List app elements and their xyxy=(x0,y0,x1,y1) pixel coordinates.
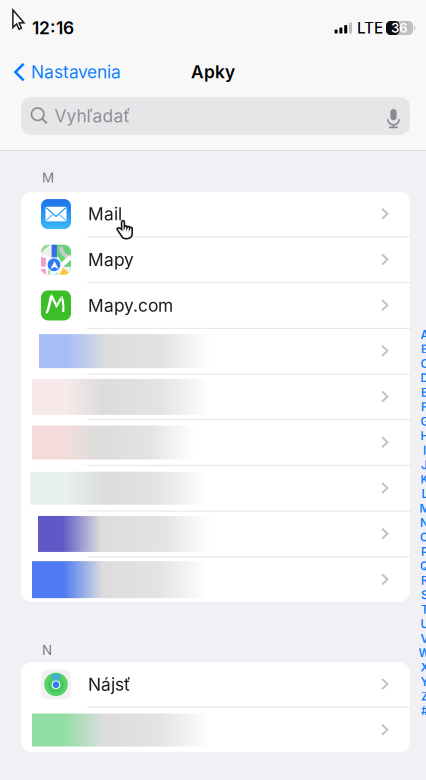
staticText: O xyxy=(420,530,426,544)
staticText: H xyxy=(420,429,426,443)
staticText: K xyxy=(420,473,426,486)
staticText: U xyxy=(420,617,426,631)
staticText: W xyxy=(418,646,426,660)
staticText: A xyxy=(420,328,426,342)
staticText: N xyxy=(420,516,426,530)
staticText: 36 xyxy=(391,20,408,36)
staticText: # xyxy=(421,704,426,718)
staticText: X xyxy=(420,661,426,674)
button[interactable]: App xyxy=(21,374,410,419)
button[interactable]: App xyxy=(21,512,410,556)
button[interactable]: App xyxy=(21,466,410,511)
staticText: N xyxy=(42,642,52,658)
staticText: Y xyxy=(420,675,426,689)
staticText: M xyxy=(419,501,426,515)
button[interactable]: Mapy xyxy=(21,237,410,282)
staticText: Vyhľadať xyxy=(54,105,130,126)
button[interactable]: App xyxy=(21,420,410,465)
button[interactable]: App xyxy=(21,329,410,373)
staticText: E xyxy=(421,386,426,399)
button[interactable]: Nájsť xyxy=(21,662,410,707)
button[interactable]: Nastavenia xyxy=(0,54,131,89)
staticText: R xyxy=(421,574,426,588)
staticText: Z xyxy=(421,689,426,703)
staticText: Nastavenia xyxy=(31,61,121,82)
staticText: Mail xyxy=(88,204,122,225)
staticText: I xyxy=(423,444,426,457)
staticText: G xyxy=(420,415,426,428)
staticText: V xyxy=(420,632,426,645)
staticText: B xyxy=(421,342,426,356)
staticText: L xyxy=(421,487,426,501)
button[interactable]: App xyxy=(21,557,410,602)
staticText: M xyxy=(42,170,54,186)
button[interactable]: Mail xyxy=(21,192,410,236)
staticText: 12:16 xyxy=(32,17,74,38)
staticText: Mapy.com xyxy=(88,295,173,316)
staticText: S xyxy=(421,588,426,602)
staticText: Mapy xyxy=(88,249,134,270)
staticText: C xyxy=(420,357,426,371)
staticText: P xyxy=(421,545,426,559)
button[interactable]: App xyxy=(21,708,410,752)
staticText: T xyxy=(421,603,426,616)
staticText: F xyxy=(421,400,426,414)
staticText: Nájsť xyxy=(88,674,131,695)
staticText: J xyxy=(421,458,426,472)
button[interactable]: Mapy.com xyxy=(21,283,410,328)
staticText: LTE xyxy=(357,19,383,37)
staticText: Apky xyxy=(191,61,235,82)
staticText: Q xyxy=(420,559,426,573)
staticText: D xyxy=(420,371,426,385)
